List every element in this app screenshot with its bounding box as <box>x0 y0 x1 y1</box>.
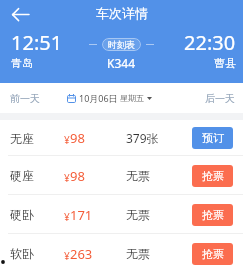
staticText: ¥ <box>64 249 70 263</box>
staticText: 无座 <box>10 131 34 146</box>
staticText: 抢票 <box>202 247 224 261</box>
staticText: ¥ <box>64 210 70 224</box>
staticText: 98 <box>70 167 85 185</box>
staticText: 22:30 <box>184 29 236 56</box>
staticText: 星期五 <box>120 93 144 103</box>
button[interactable]: 时刻表 <box>108 38 135 51</box>
staticText: 263 <box>70 245 93 263</box>
button[interactable]: 后一天 <box>204 88 236 109</box>
staticText: ¥ <box>64 133 70 147</box>
staticText: K344 <box>107 55 136 71</box>
staticText: 抢票 <box>202 169 224 183</box>
staticText: 无票 <box>126 168 150 183</box>
button[interactable]: 硬座 <box>0 156 243 195</box>
button[interactable]: 硬卧 <box>0 195 243 234</box>
button[interactable]: 抢票 <box>192 204 233 226</box>
staticText: 后一天 <box>205 92 235 105</box>
button[interactable]: 无座 <box>0 120 243 156</box>
staticText: 98 <box>70 129 85 147</box>
button[interactable]: 前一天 <box>9 88 41 109</box>
staticText: 12:51 <box>11 29 63 56</box>
staticText: 车次详情 <box>96 5 148 21</box>
button[interactable]: 预订 <box>192 127 233 149</box>
staticText: 抢票 <box>202 208 224 222</box>
staticText: 时刻表 <box>108 39 135 50</box>
staticText: 硬座 <box>10 168 34 183</box>
staticText: 硬卧 <box>10 207 34 222</box>
staticText: 青岛 <box>11 56 33 70</box>
button[interactable]: 10月06日 <box>67 92 152 104</box>
staticText: 10月06日 <box>79 92 118 104</box>
staticText: 前一天 <box>10 92 40 105</box>
button[interactable]: 软卧 <box>0 234 243 268</box>
staticText: ¥ <box>64 171 70 185</box>
staticText: 171 <box>70 206 93 224</box>
staticText: 软卧 <box>10 246 34 261</box>
button[interactable]: Back <box>7 1 35 29</box>
button[interactable]: 抢票 <box>192 243 233 265</box>
button[interactable]: 抢票 <box>192 165 233 187</box>
staticText: 曹县 <box>214 56 236 70</box>
staticText: 无票 <box>126 246 150 261</box>
staticText: 预订 <box>202 131 224 145</box>
staticText: 379张 <box>126 130 159 146</box>
staticText: 无票 <box>126 207 150 222</box>
